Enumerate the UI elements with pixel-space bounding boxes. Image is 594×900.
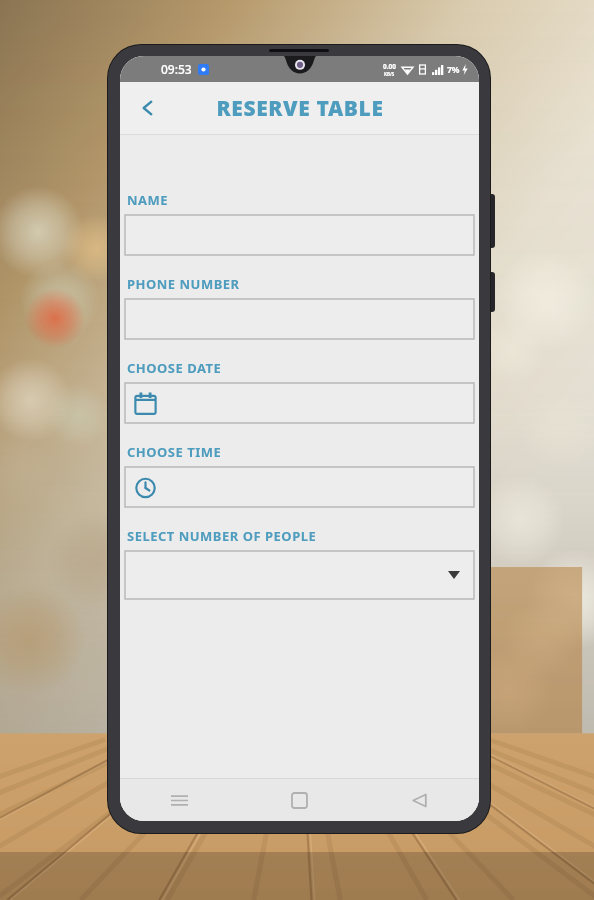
staticText: RESERVE TABLE [216, 94, 384, 123]
button[interactable]: Recent apps [120, 779, 239, 821]
staticText: NAME [127, 191, 169, 209]
staticText: CHOOSE DATE [127, 359, 222, 377]
staticText: PHONE NUMBER [127, 275, 240, 293]
button[interactable] [125, 299, 474, 339]
staticText: 0.00 [383, 62, 396, 71]
button[interactable]: Home [239, 779, 359, 821]
staticText: SELECT NUMBER OF PEOPLE [127, 527, 317, 545]
staticText: 7% [447, 64, 460, 76]
button[interactable]: Back [126, 86, 170, 130]
staticText: KB/S [384, 71, 395, 77]
button[interactable]: Choose time [125, 467, 474, 507]
button[interactable]: Choose date [125, 383, 474, 423]
button[interactable]: Back [359, 779, 479, 821]
button[interactable]: Select number of people [125, 551, 474, 599]
staticText: 09:53 [161, 61, 192, 77]
staticText: CHOOSE TIME [127, 443, 222, 461]
button[interactable] [125, 215, 474, 255]
